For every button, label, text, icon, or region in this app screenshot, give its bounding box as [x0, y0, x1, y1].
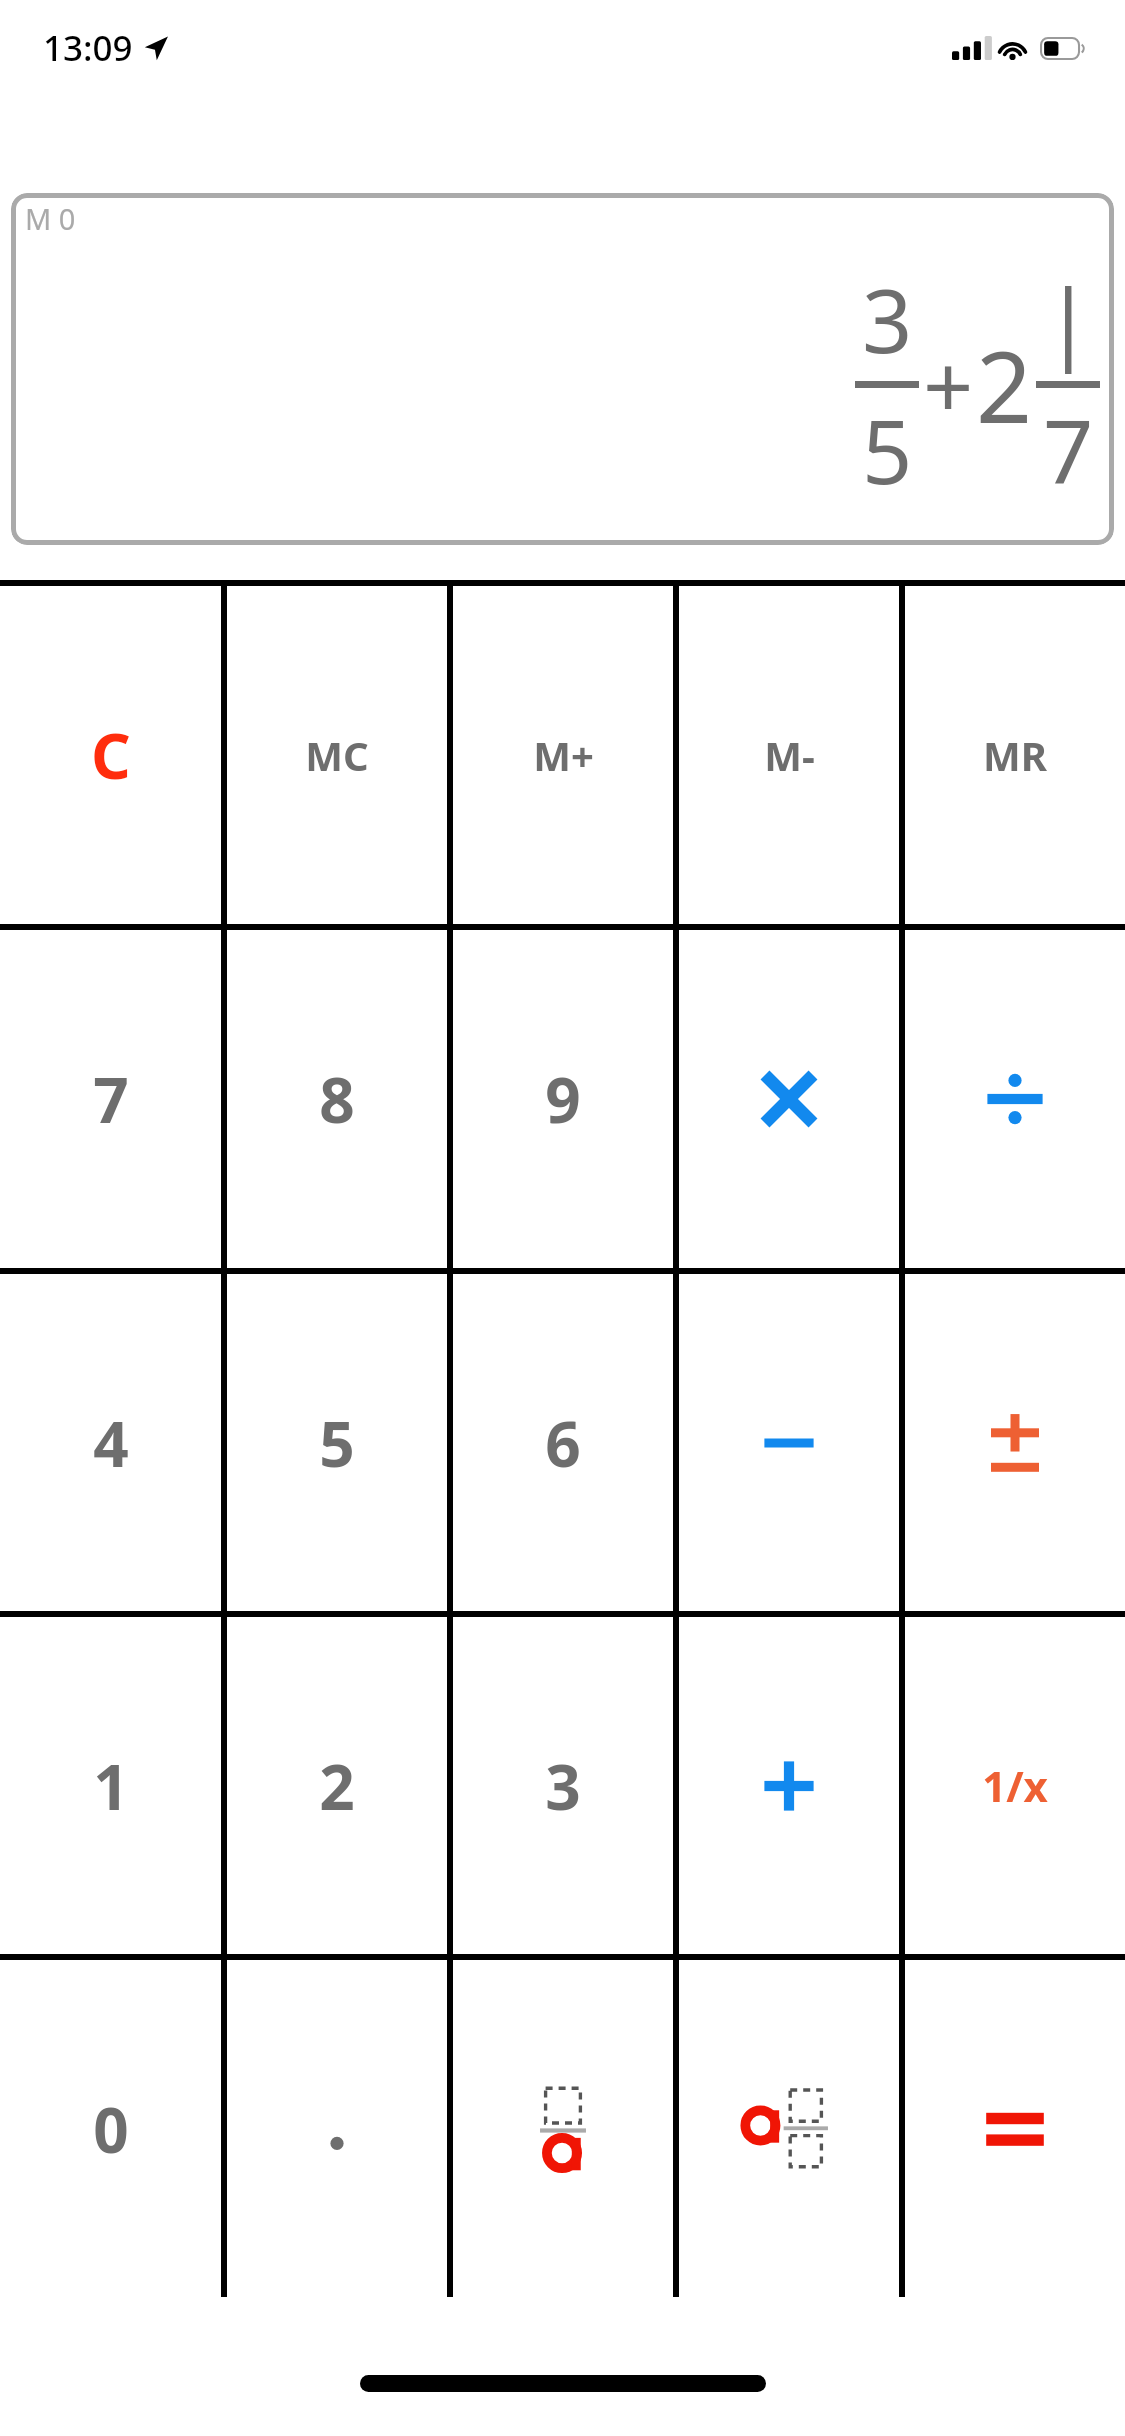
button[interactable]: 9 — [453, 930, 673, 1268]
staticText: 5 — [862, 390, 913, 510]
button[interactable]: 7 — [0, 930, 221, 1268]
button[interactable]: Fraction — [453, 1960, 673, 2297]
button[interactable]: M 0 — [11, 193, 1114, 545]
button[interactable]: 8 — [227, 930, 447, 1268]
staticText: 3 — [545, 1744, 581, 1828]
staticText: 9 — [545, 1057, 581, 1141]
staticText: 4 — [93, 1401, 129, 1485]
button[interactable]: 2 — [227, 1617, 447, 1954]
staticText: + — [923, 325, 974, 445]
button[interactable]: 1/x — [905, 1617, 1125, 1954]
button[interactable]: Plus minus — [905, 1274, 1125, 1611]
button[interactable]: M+ — [453, 586, 673, 924]
staticText: 2 — [976, 318, 1033, 451]
staticText: 6 — [545, 1401, 581, 1485]
staticText: M- — [764, 728, 815, 782]
button[interactable]: Mixed number — [679, 1960, 899, 2297]
staticText: 7 — [1043, 390, 1094, 510]
button[interactable]: Multiply — [679, 930, 899, 1268]
staticText: M+ — [533, 728, 594, 782]
button[interactable]: 6 — [453, 1274, 673, 1611]
button[interactable]: 1 — [0, 1617, 221, 1954]
staticText: 1 — [93, 1744, 129, 1828]
button[interactable]: C — [0, 586, 221, 924]
button[interactable]: MC — [227, 586, 447, 924]
staticText: 2 — [319, 1744, 355, 1828]
staticText: 3 — [862, 259, 913, 379]
button[interactable]: MR — [905, 586, 1125, 924]
staticText: MR — [983, 728, 1047, 782]
staticText: | — [1044, 259, 1093, 379]
staticText: M 0 — [25, 199, 76, 238]
button[interactable]: Divide — [905, 930, 1125, 1268]
staticText: 13:09 — [43, 24, 133, 72]
button[interactable]: M- — [679, 586, 899, 924]
staticText: 5 — [319, 1401, 355, 1485]
staticText: 7 — [93, 1057, 129, 1141]
button[interactable]: 4 — [0, 1274, 221, 1611]
button[interactable]: Equals — [905, 1960, 1125, 2297]
button[interactable]: 0 — [0, 1960, 221, 2297]
button[interactable]: Decimal point — [227, 1960, 447, 2297]
button[interactable]: Minus — [679, 1274, 899, 1611]
staticText: 0 — [93, 2087, 129, 2171]
staticText: C — [91, 713, 131, 797]
button[interactable]: 5 — [227, 1274, 447, 1611]
staticText: 1/x — [982, 1757, 1048, 1814]
button[interactable]: Plus — [679, 1617, 899, 1954]
button[interactable]: 3 — [453, 1617, 673, 1954]
staticText: MC — [305, 728, 369, 782]
staticText: 8 — [319, 1057, 355, 1141]
